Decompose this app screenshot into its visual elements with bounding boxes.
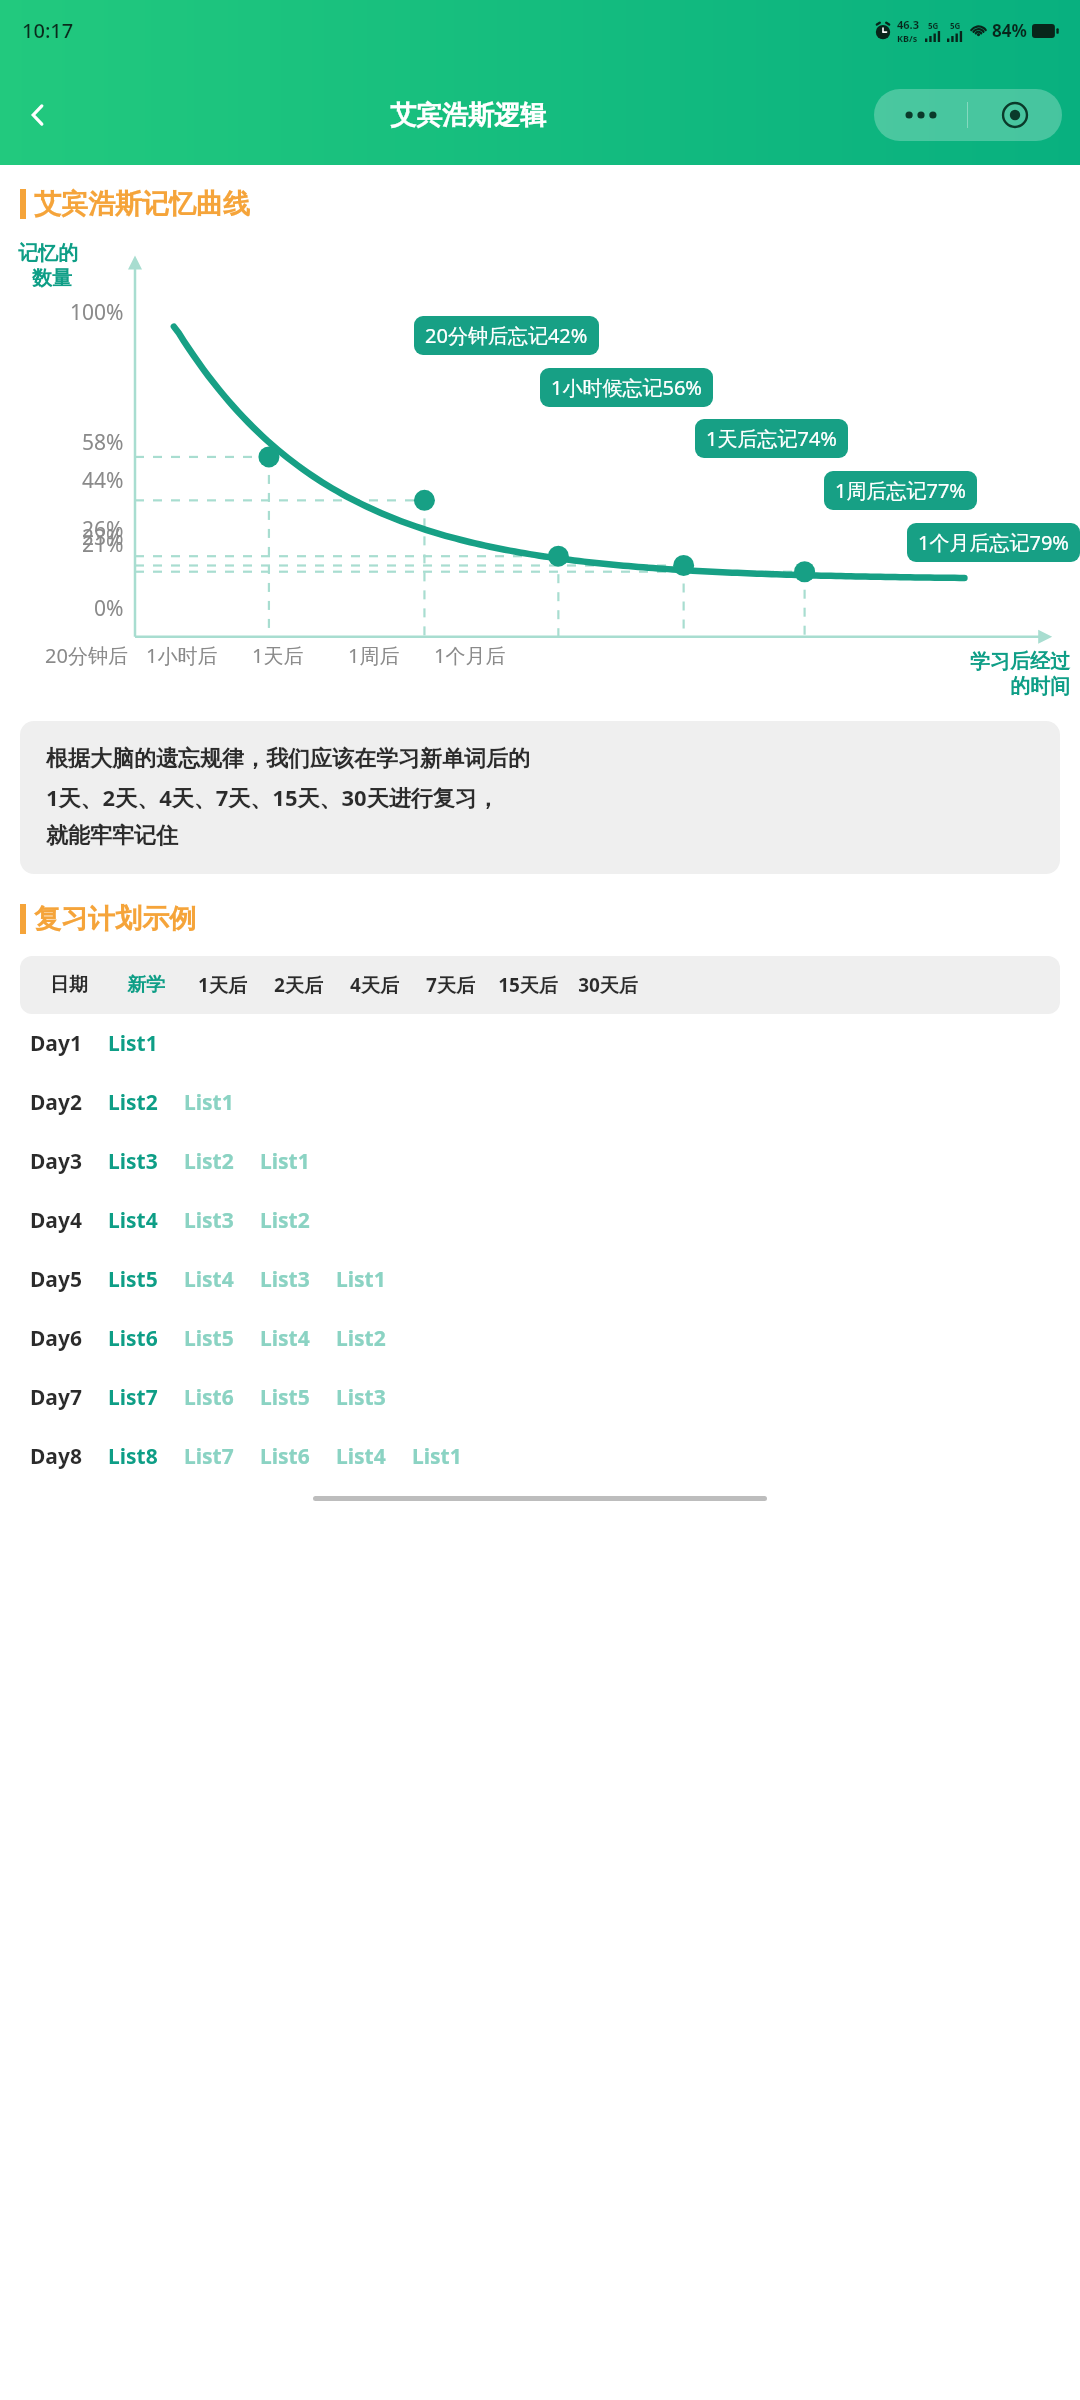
staticText: 84% (992, 19, 1027, 42)
staticText: List3 (336, 1383, 386, 1412)
staticText: 44% (82, 466, 124, 495)
staticText: List1 (184, 1088, 234, 1117)
button[interactable]: 1周后忘记77% (824, 471, 977, 510)
button[interactable]: 1个月后忘记79% (907, 523, 1080, 562)
staticText: List6 (108, 1324, 158, 1353)
staticText: 20分钟后忘记42% (425, 322, 588, 349)
staticText: List1 (260, 1147, 310, 1176)
button[interactable]: Day2 (0, 1073, 1080, 1132)
staticText: 23% (82, 523, 124, 552)
staticText: List2 (260, 1206, 310, 1235)
button[interactable]: Day1 (0, 1014, 1080, 1073)
staticText: List5 (108, 1265, 158, 1294)
staticText: 1周后 (348, 642, 400, 669)
staticText: 58% (82, 428, 124, 457)
staticText: 5G (928, 20, 939, 31)
staticText: List4 (108, 1206, 158, 1235)
staticText: List2 (184, 1147, 234, 1176)
button[interactable]: Day6 (0, 1309, 1080, 1368)
staticText: Day1 (30, 1029, 82, 1058)
button[interactable]: Day5 (0, 1250, 1080, 1309)
staticText: List7 (184, 1442, 234, 1471)
button[interactable]: Day4 (0, 1191, 1080, 1250)
button[interactable]: 20分钟后忘记42% (414, 316, 599, 355)
staticText: Day3 (30, 1147, 82, 1176)
staticText: 数量 (32, 266, 72, 291)
staticText: 新学 (127, 973, 165, 997)
staticText: Day2 (30, 1088, 82, 1117)
staticText: 10:17 (22, 17, 74, 44)
staticText: 2天后 (274, 972, 323, 998)
staticText: List1 (412, 1442, 462, 1471)
staticText: List1 (336, 1265, 386, 1294)
staticText: List1 (108, 1029, 158, 1058)
staticText: 1小时后 (146, 642, 218, 669)
staticText: 21% (82, 530, 124, 559)
staticText: 1周后忘记77% (835, 477, 966, 504)
staticText: Day4 (30, 1206, 82, 1235)
staticText: Day6 (30, 1324, 82, 1353)
staticText: 1天后 (198, 972, 247, 998)
staticText: 1小时候忘记56% (551, 374, 702, 401)
staticText: List2 (336, 1324, 386, 1353)
button[interactable]: 1天后忘记74% (695, 419, 848, 458)
staticText: 记忆的 (18, 241, 78, 266)
staticText: List2 (108, 1088, 158, 1117)
staticText: 15天后 (498, 972, 558, 998)
staticText: Day8 (30, 1442, 82, 1471)
staticText: 46.3 (897, 17, 919, 32)
staticText: 艾宾浩斯记忆曲线 (34, 187, 250, 221)
staticText: 4天后 (350, 972, 399, 998)
staticText: 20分钟后 (45, 642, 128, 669)
button[interactable]: 1小时候忘记56% (540, 368, 713, 407)
staticText: 根据大脑的遗忘规律，我们应该在学习新单词后的 1天、2天、4天、7天、15天、3… (46, 745, 530, 850)
staticText: List7 (108, 1383, 158, 1412)
staticText: 100% (70, 298, 124, 327)
staticText: 复习计划示例 (34, 902, 196, 936)
staticText: List3 (108, 1147, 158, 1176)
staticText: 学习后经过 (970, 649, 1070, 674)
staticText: List4 (336, 1442, 386, 1471)
staticText: 7天后 (426, 972, 475, 998)
staticText: KB/s (897, 32, 918, 44)
staticText: 艾宾浩斯逻辑 (390, 99, 546, 132)
button[interactable]: Day7 (0, 1368, 1080, 1427)
staticText: 0% (94, 594, 124, 623)
staticText: List6 (184, 1383, 234, 1412)
staticText: Day7 (30, 1383, 82, 1412)
staticText: Day5 (30, 1265, 82, 1294)
staticText: List3 (260, 1265, 310, 1294)
staticText: 26% (82, 515, 124, 544)
staticText: List5 (260, 1383, 310, 1412)
staticText: List4 (260, 1324, 310, 1353)
staticText: 的时间 (1010, 674, 1070, 699)
staticText: List5 (184, 1324, 234, 1353)
staticText: 日期 (50, 973, 88, 997)
staticText: 30天后 (578, 972, 638, 998)
staticText: List6 (260, 1442, 310, 1471)
staticText: List3 (184, 1206, 234, 1235)
staticText: 1个月后忘记79% (918, 529, 1069, 556)
button[interactable]: Day8 (0, 1427, 1080, 1486)
button[interactable]: Menu (874, 89, 1062, 141)
staticText: List8 (108, 1442, 158, 1471)
staticText: 5G (950, 20, 961, 31)
staticText: 1天后 (252, 642, 304, 669)
button[interactable]: Back (14, 91, 62, 139)
button[interactable]: Day3 (0, 1132, 1080, 1191)
staticText: List4 (184, 1265, 234, 1294)
staticText: 1个月后 (434, 642, 506, 669)
staticText: 1天后忘记74% (706, 425, 837, 452)
